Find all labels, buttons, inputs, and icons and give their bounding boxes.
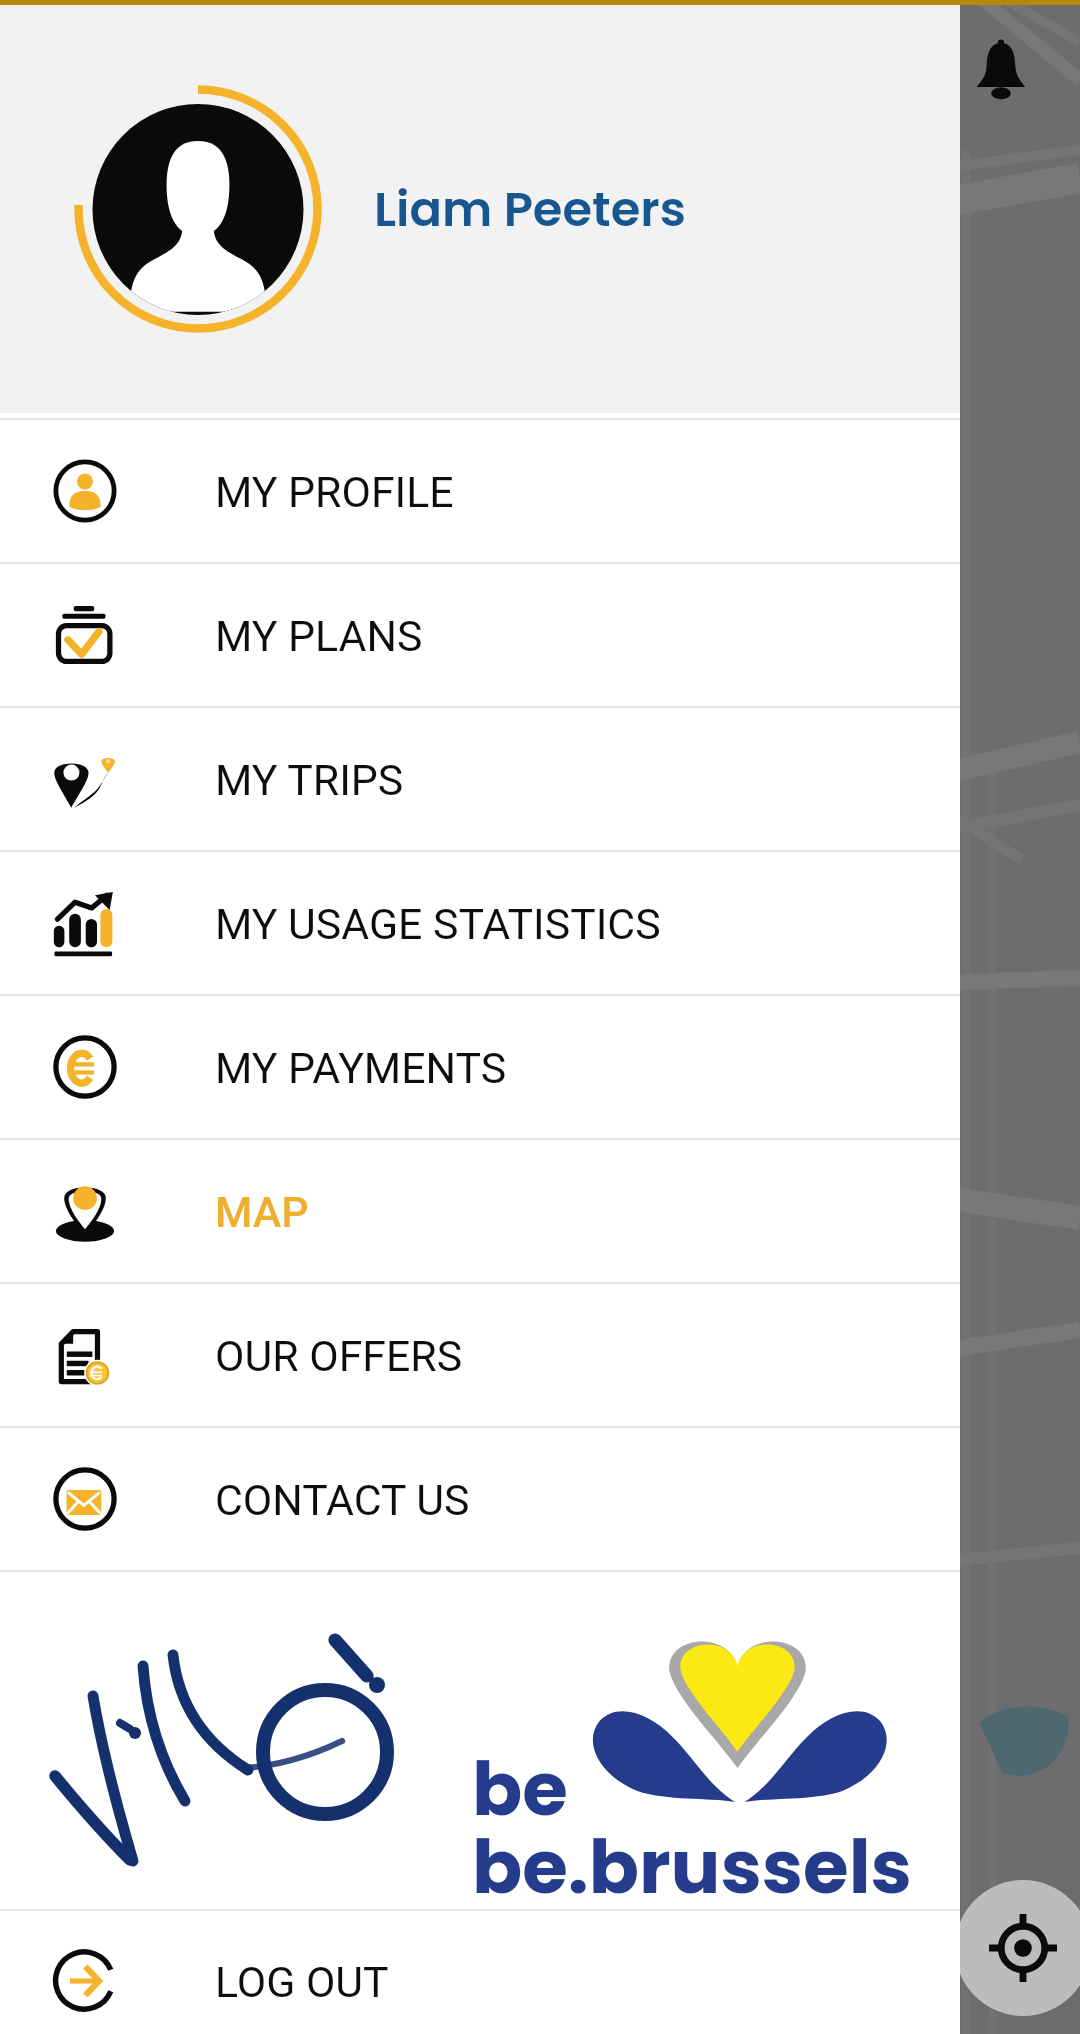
staticText: LOG OUT [215, 1957, 389, 2007]
staticText: CONTACT US [215, 1475, 470, 1525]
staticText: be [472, 1737, 568, 1841]
staticText: MY PAYMENTS [215, 1043, 507, 1093]
button[interactable]: MY USAGE STATISTICS [0, 852, 960, 994]
button[interactable]: Notifications [966, 38, 1036, 108]
staticText: Liam Peeters [374, 176, 686, 243]
button[interactable]: MAP [0, 1140, 960, 1282]
staticText: MY PLANS [215, 611, 423, 661]
staticText: OUR OFFERS [215, 1331, 463, 1381]
staticText: MY TRIPS [215, 755, 404, 805]
button[interactable]: LOG OUT [0, 1911, 960, 2034]
button[interactable]: OUR OFFERS [0, 1284, 960, 1426]
button[interactable]: MY PLANS [0, 564, 960, 706]
staticText: be.brussels [472, 1815, 912, 1919]
staticText: MAP [215, 1187, 309, 1237]
button[interactable]: MY PROFILE [0, 420, 960, 562]
button[interactable]: MY TRIPS [0, 708, 960, 850]
button[interactable]: CONTACT US [0, 1428, 960, 1570]
button[interactable]: My location [955, 1880, 1080, 2016]
button[interactable]: Liam Peeters [0, 0, 960, 413]
staticText: MY PROFILE [215, 467, 454, 517]
button[interactable]: MY PAYMENTS [0, 996, 960, 1138]
staticText: MY USAGE STATISTICS [215, 899, 661, 949]
